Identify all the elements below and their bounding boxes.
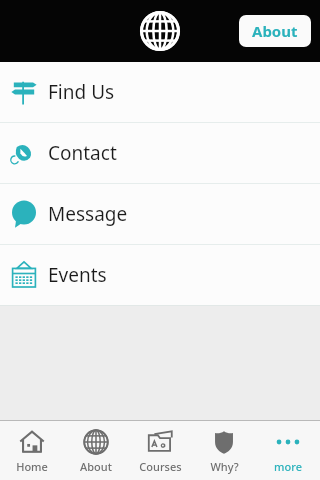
staticText: Find Us — [48, 79, 115, 105]
button[interactable]: Events — [0, 245, 320, 305]
staticText: Courses — [139, 459, 182, 474]
staticText: Home — [16, 459, 48, 474]
staticText: more — [274, 459, 302, 474]
button[interactable]: About — [239, 15, 311, 47]
button[interactable]: more — [256, 421, 320, 480]
button[interactable]: Find Us — [0, 62, 320, 122]
button[interactable]: Home — [0, 421, 64, 480]
button[interactable]: About — [64, 421, 128, 480]
button[interactable]: Why? — [192, 421, 256, 480]
button[interactable]: Message — [0, 184, 320, 244]
staticText: About — [252, 21, 298, 41]
staticText: Message — [48, 201, 128, 227]
staticText: Events — [48, 262, 107, 288]
button[interactable]: Contact — [0, 123, 320, 183]
staticText: Why? — [210, 459, 239, 474]
staticText: Contact — [48, 140, 117, 166]
staticText: About — [80, 459, 112, 474]
other: Logo — [138, 9, 182, 53]
button[interactable]: Courses — [128, 421, 192, 480]
